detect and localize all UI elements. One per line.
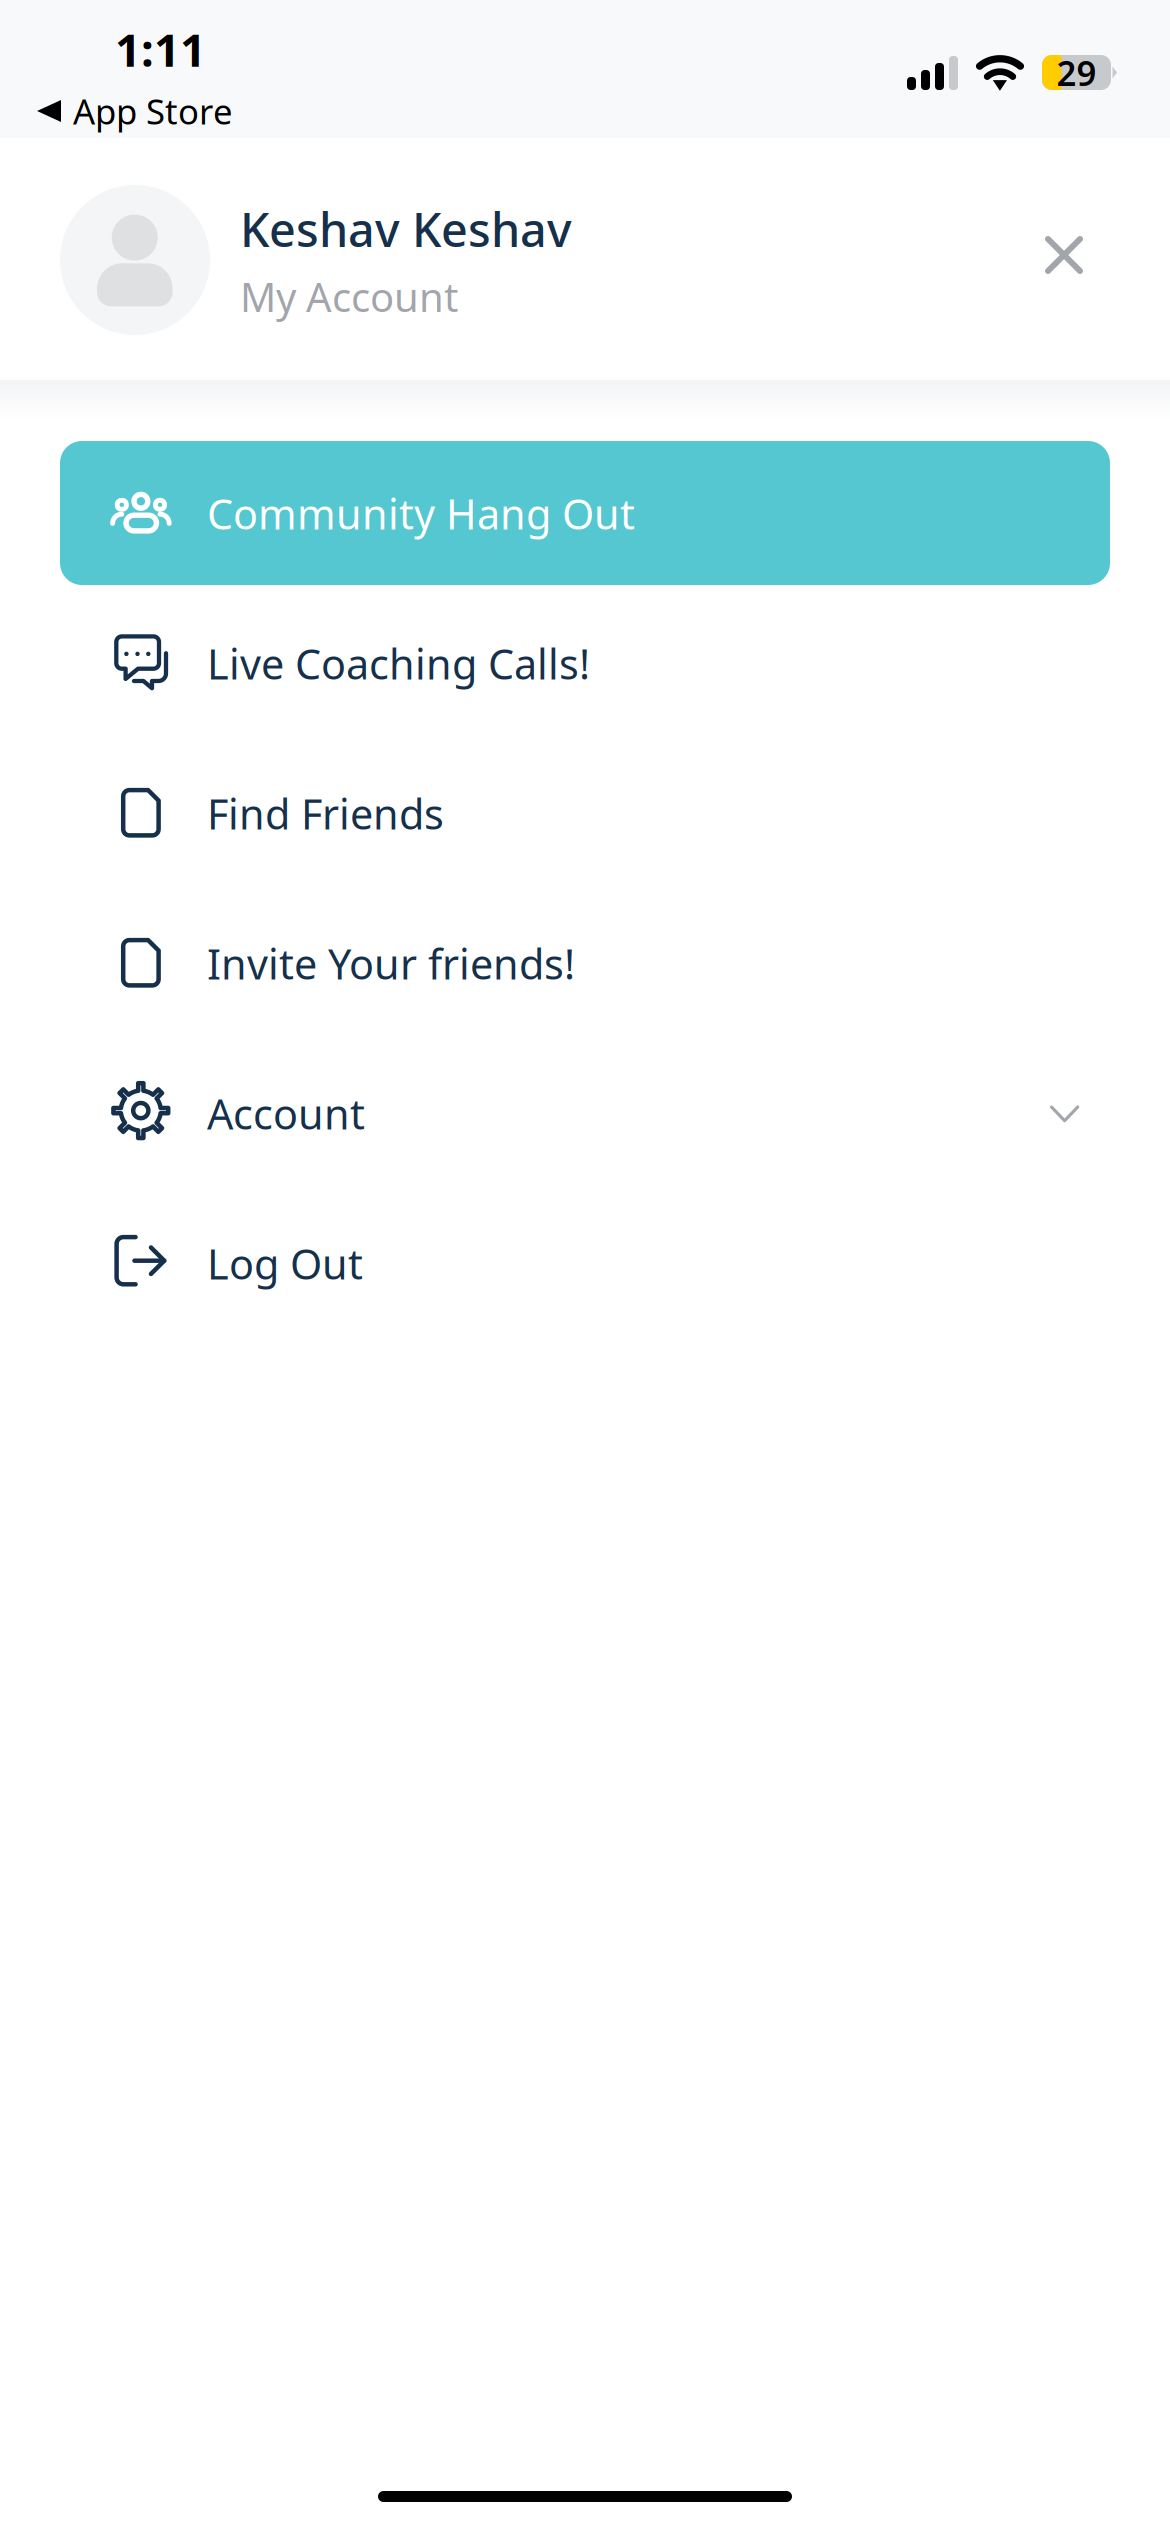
button[interactable]: Community Hang Out [60, 441, 1110, 585]
button[interactable]: Invite Your friends! [60, 891, 1110, 1035]
button[interactable]: Find Friends [60, 741, 1110, 885]
staticText: Account [207, 1086, 365, 1141]
staticText: 29 [1056, 49, 1096, 95]
button[interactable]: Live Coaching Calls! [60, 591, 1110, 735]
staticText: Keshav Keshav [240, 198, 572, 260]
button[interactable]: Log Out [60, 1191, 1110, 1335]
staticText: Invite Your friends! [207, 936, 575, 991]
staticText: Log Out [207, 1236, 363, 1291]
staticText: My Account [240, 270, 458, 323]
button[interactable]: Close [1016, 207, 1112, 303]
staticText: 1:11 [115, 19, 206, 79]
staticText: Live Coaching Calls! [207, 636, 590, 691]
staticText: Community Hang Out [207, 486, 635, 541]
staticText: App Store [73, 88, 233, 134]
button[interactable]: Account [60, 1041, 1110, 1185]
staticText: Find Friends [207, 786, 444, 841]
button[interactable]: App Store [37, 89, 267, 133]
